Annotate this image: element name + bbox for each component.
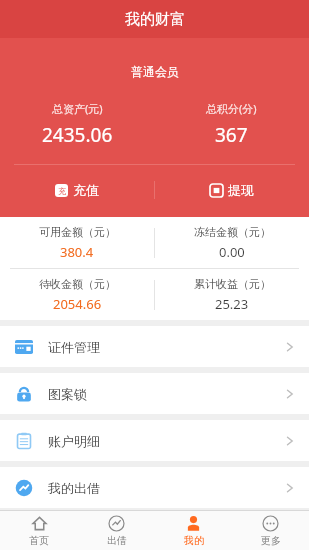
staticText: 提现 — [228, 182, 254, 198]
button[interactable]: 证件管理 — [0, 326, 309, 367]
staticText: 首页 — [29, 534, 49, 547]
button[interactable]: 我的 — [155, 511, 232, 550]
staticText: 累计收益（元） — [194, 277, 271, 291]
button[interactable]: 提现 — [155, 175, 309, 205]
button[interactable]: 我的出借 — [0, 467, 309, 508]
staticText: 367 — [215, 122, 248, 148]
staticText: 出借 — [107, 534, 127, 547]
staticText: 充 — [58, 186, 66, 196]
staticText: 380.4 — [60, 243, 94, 261]
staticText: 冻结金额（元） — [194, 225, 271, 239]
staticText: 更多 — [261, 534, 281, 547]
button[interactable]: 充 — [0, 175, 154, 205]
staticText: 总资产(元) — [52, 101, 103, 116]
staticText: 证件管理 — [48, 339, 100, 355]
button[interactable]: 图案锁 — [0, 373, 309, 414]
staticText: 我的财富 — [125, 10, 185, 29]
staticText: 待收金额（元） — [39, 277, 116, 291]
button[interactable]: 账户明细 — [0, 420, 309, 461]
button[interactable]: 更多 — [232, 511, 309, 550]
staticText: 总积分(分) — [206, 101, 257, 116]
staticText: 图案锁 — [48, 386, 87, 402]
staticText: 充值 — [73, 182, 99, 198]
button[interactable]: 出借 — [78, 511, 155, 550]
staticText: 25.23 — [215, 295, 249, 313]
staticText: 我的出借 — [48, 480, 100, 496]
staticText: 账户明细 — [48, 433, 100, 449]
staticText: 普通会员 — [131, 64, 179, 79]
staticText: 可用金额（元） — [39, 225, 116, 239]
staticText: 0.00 — [219, 243, 245, 261]
staticText: 2054.66 — [53, 295, 102, 313]
button[interactable]: 首页 — [0, 511, 78, 550]
staticText: 我的 — [184, 534, 204, 547]
staticText: 2435.06 — [42, 122, 113, 148]
